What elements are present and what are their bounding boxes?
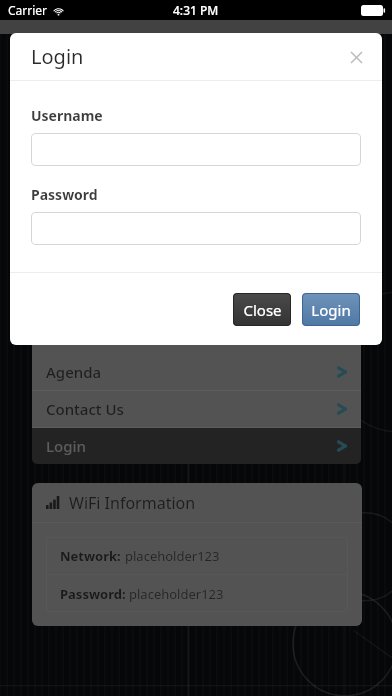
button[interactable]: Login <box>302 293 360 326</box>
staticText: Contact Us <box>46 399 124 419</box>
staticText: placeholder123 <box>129 585 224 603</box>
staticText: Agenda <box>46 362 102 382</box>
button[interactable]: Login <box>32 428 361 464</box>
staticText: placeholder123 <box>125 547 220 565</box>
button[interactable]: Close <box>233 293 291 326</box>
button[interactable] <box>31 133 361 166</box>
staticText: Login <box>46 436 86 456</box>
button[interactable] <box>31 212 361 245</box>
staticText: WiFi Information <box>69 492 196 514</box>
staticText: Close <box>243 300 282 320</box>
staticText: Username <box>31 106 103 125</box>
staticText: Password: <box>60 585 129 603</box>
button[interactable]: Agenda <box>32 354 361 390</box>
button[interactable]: Contact Us <box>32 391 361 427</box>
staticText: Network: <box>60 547 125 565</box>
button[interactable]: Close <box>342 43 370 71</box>
staticText: Login <box>31 43 84 70</box>
staticText: 4:31 PM <box>173 2 219 18</box>
staticText: Login <box>311 300 351 320</box>
staticText: Carrier <box>8 2 48 18</box>
staticText: Password <box>31 185 98 204</box>
